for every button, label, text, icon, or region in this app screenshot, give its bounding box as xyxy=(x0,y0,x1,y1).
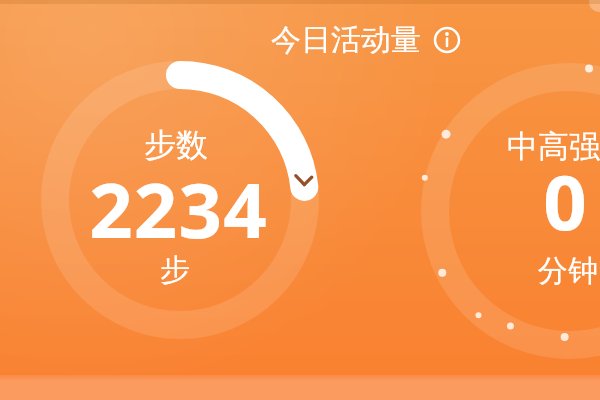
staticText: 中高强度 xyxy=(507,127,600,166)
staticText: 0 xyxy=(543,149,588,253)
staticText: 分钟 xyxy=(538,252,598,290)
button[interactable] xyxy=(0,375,600,400)
staticText: 步 xyxy=(160,251,190,289)
staticText: 步数 xyxy=(144,125,208,165)
button[interactable]: 今日活动量 xyxy=(246,16,466,64)
staticText: 今日活动量 xyxy=(271,21,421,59)
staticText: 2234 xyxy=(89,157,268,261)
